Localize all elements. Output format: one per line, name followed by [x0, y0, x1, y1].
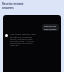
staticText: Receive instant answers [2, 2, 24, 10]
staticText: I can answer questions, write and edit t… [10, 33, 36, 46]
staticText: What can you help me with? [44, 25, 57, 30]
button[interactable]: What can you help me with? [3, 15, 61, 72]
